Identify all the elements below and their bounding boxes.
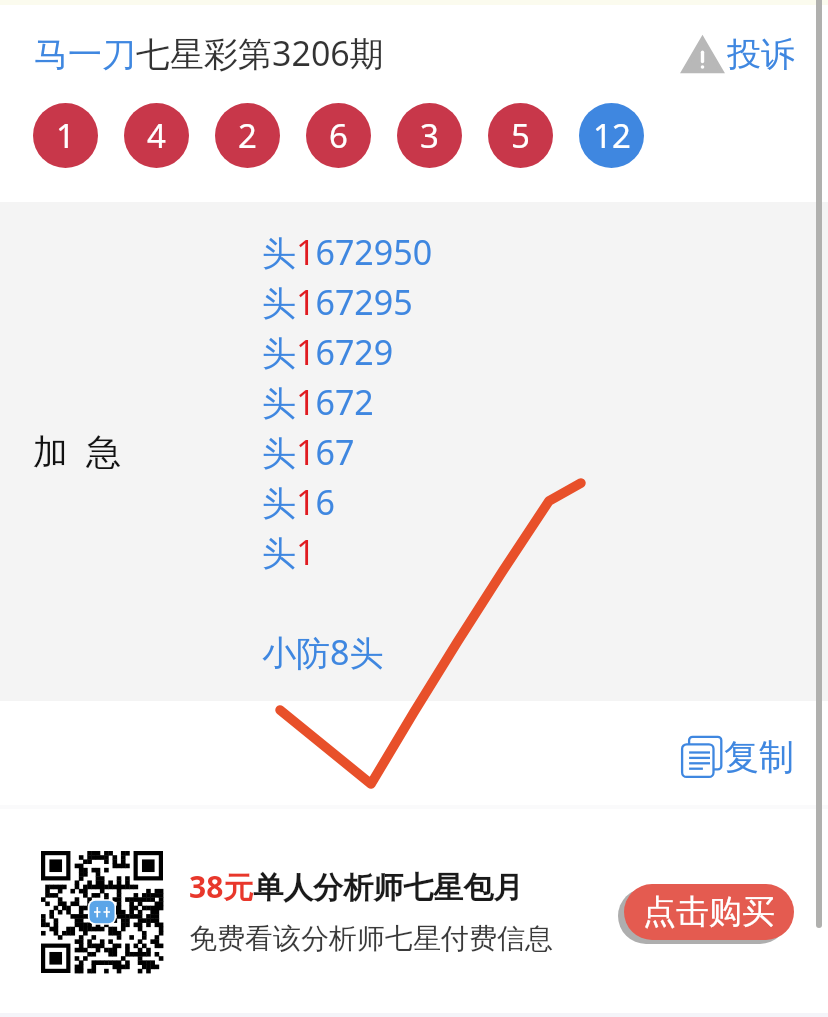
button[interactable]: 5 (488, 103, 553, 168)
staticText: 免费看该分析师七星付费信息 (189, 921, 553, 956)
staticText: 2 (238, 113, 257, 158)
staticText: 1 (56, 113, 75, 158)
button[interactable]: 4 (124, 103, 189, 168)
button[interactable]: 12 (579, 103, 644, 168)
other: Copy (678, 733, 722, 777)
staticText: 头1 (262, 529, 316, 579)
button[interactable]: Report (679, 28, 799, 86)
button[interactable]: 6 (306, 103, 371, 168)
staticText: 头16 (262, 479, 335, 529)
button[interactable]: Copy (674, 729, 798, 781)
staticText: 5 (511, 113, 530, 158)
staticText: 头1672950 (262, 229, 433, 279)
staticText: 头16729 (262, 329, 394, 379)
button[interactable]: 2 (215, 103, 280, 168)
staticText: 复制 (724, 735, 794, 779)
staticText: 3 (420, 113, 439, 158)
button[interactable]: 3 (397, 103, 462, 168)
staticText: 头167 (262, 429, 355, 479)
staticText: 点击购买 (643, 891, 775, 933)
staticText: 12 (593, 113, 631, 158)
staticText: 投诉 (727, 33, 795, 76)
staticText: 加 急 (33, 427, 122, 475)
other: Report (683, 32, 722, 76)
button[interactable]: 点击购买 (624, 884, 794, 940)
staticText: 马一刀七星彩第3206期 (34, 30, 384, 76)
staticText: 小防8头 (262, 629, 384, 679)
staticText: 头167295 (262, 279, 413, 329)
staticText: 6 (329, 113, 348, 158)
button[interactable]: 1 (33, 103, 98, 168)
staticText: 头1672 (262, 379, 374, 429)
staticText: 4 (147, 113, 166, 158)
staticText: 38元单人分析师七星包月 (189, 866, 524, 907)
